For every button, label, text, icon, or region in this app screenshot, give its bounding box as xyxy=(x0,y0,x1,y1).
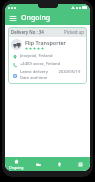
button[interactable]: Open navigation menu xyxy=(8,13,18,23)
staticText: Ongoing xyxy=(9,165,24,170)
staticText: Delivery No : 34 xyxy=(11,29,44,35)
staticText: Ongoing xyxy=(21,13,51,23)
staticText: Date and time xyxy=(20,75,48,81)
button[interactable]: Deliveries history xyxy=(27,157,48,171)
staticText: Flip Transporter xyxy=(25,39,66,46)
staticText: Latest delivery 2020/05/19 12:50:00 xyxy=(20,69,83,75)
button[interactable]: Ongoing deliveries xyxy=(5,157,27,171)
staticText: Picked up xyxy=(64,29,84,35)
button[interactable]: Profile xyxy=(69,157,90,171)
staticText: Jeovjotal, Finland xyxy=(20,53,53,59)
staticText: +44(0) xxxxx, Finland xyxy=(20,61,60,67)
button[interactable]: Delivery No : 34 xyxy=(8,27,87,84)
button[interactable]: Notifications xyxy=(48,157,69,171)
